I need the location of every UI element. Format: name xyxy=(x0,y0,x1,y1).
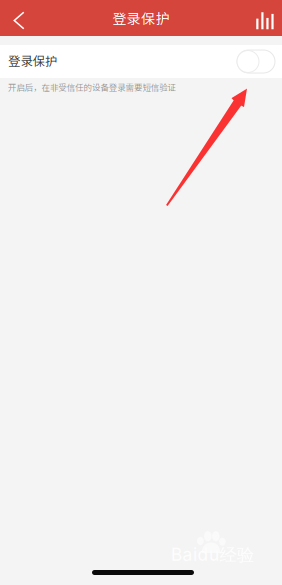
staticText: 登录保护 xyxy=(113,8,169,28)
staticText: Baidu经验 xyxy=(171,544,254,566)
button[interactable]: Statistics xyxy=(246,0,282,36)
staticText: 登录保护 xyxy=(8,52,57,69)
staticText: 开启后，在非受信任的设备登录需要短信验证 xyxy=(8,81,176,93)
button[interactable]: 登录保护 xyxy=(0,45,282,78)
button[interactable]: Back xyxy=(0,0,38,36)
